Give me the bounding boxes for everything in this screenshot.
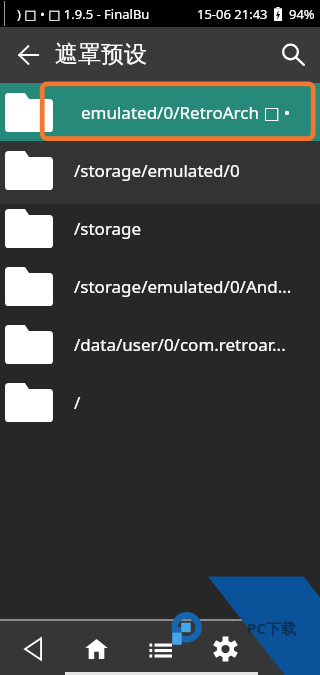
staticText: /storage xyxy=(74,217,142,240)
button[interactable]: /data/user/0/com.retroar... xyxy=(0,315,320,373)
staticText: /storage/emulated/0 xyxy=(74,159,240,182)
button[interactable]: /storage/emulated/0/And... xyxy=(0,257,320,315)
staticText: 94% xyxy=(289,5,315,23)
button[interactable]: /storage xyxy=(0,199,320,257)
button[interactable]: Recents xyxy=(137,621,183,672)
button[interactable]: / xyxy=(0,373,320,431)
staticText: / xyxy=(74,391,81,414)
staticText: 遮罩预设 xyxy=(55,40,147,69)
button[interactable]: emulated/0/RetroArch □ • xyxy=(0,83,320,141)
staticText: PC下载 xyxy=(247,618,296,638)
button[interactable]: /storage/emulated/0 xyxy=(0,141,320,199)
staticText: 15-06 21:43 xyxy=(197,5,268,23)
button[interactable]: Settings xyxy=(202,621,248,672)
staticText: emulated/0/RetroArch □ • xyxy=(81,101,291,124)
staticText: ) □ • □ 1.9.5 - FinalBu xyxy=(17,5,150,23)
staticText: /data/user/0/com.retroar... xyxy=(74,333,286,356)
staticText: /storage/emulated/0/And... xyxy=(74,275,292,298)
button[interactable]: Search xyxy=(273,35,313,75)
button[interactable]: Back xyxy=(8,35,48,75)
button[interactable]: Home xyxy=(73,621,119,672)
button[interactable]: Back xyxy=(10,621,56,672)
